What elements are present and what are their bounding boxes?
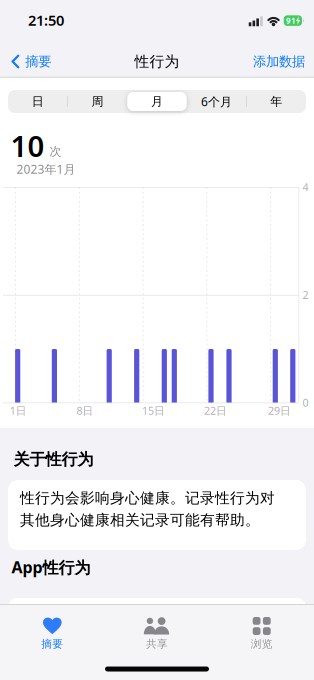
staticText: 10 [10,126,44,165]
staticText: 性行为会影响身心健康。记录性行为对 [20,489,275,507]
staticText: 浏览 [251,637,273,650]
staticText: App性行为 [11,556,90,578]
button[interactable]: 日 [9,92,66,111]
button[interactable]: 年 [248,92,305,111]
staticText: 摘要 [25,53,51,70]
staticText: 2 [302,288,308,302]
button[interactable]: 摘要 [2,608,102,658]
button[interactable]: 6个月 [188,92,245,111]
staticText: 共享 [146,637,168,650]
staticText: 21:50 [28,10,64,30]
staticText: 0 [302,395,308,410]
button[interactable]: 共享 [107,608,207,658]
staticText: 日 [32,94,44,109]
staticText: 15日 [142,403,165,418]
staticText: 周 [91,94,103,109]
staticText: 4 [302,180,308,194]
staticText: 2023年1月 [16,161,75,177]
staticText: 6个月 [201,93,232,109]
button[interactable]: 周 [69,92,126,111]
staticText: 91 [286,15,296,26]
button[interactable]: 摘要 [11,53,51,70]
staticText: 次 [49,144,61,159]
button[interactable]: 浏览 [212,608,312,658]
staticText: 1日 [10,403,27,418]
staticText: 性行为 [134,52,179,70]
button[interactable]: 月 [128,92,185,111]
staticText: 添加数据 [253,53,305,70]
staticText: 摘要 [41,637,63,650]
button[interactable]: 添加数据 [253,53,305,70]
staticText: 月 [151,94,163,109]
staticText: 关于性行为 [13,450,93,469]
staticText: 年 [270,94,282,109]
staticText: 8日 [76,403,93,418]
staticText: 29日 [268,403,291,418]
staticText: 其他身心健康相关记录可能有帮助。 [20,511,260,529]
staticText: 22日 [204,403,227,418]
